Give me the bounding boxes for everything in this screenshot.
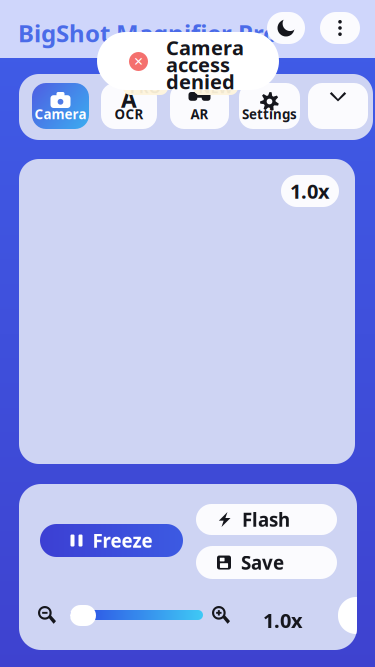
button[interactable]: A xyxy=(101,83,157,129)
staticText: access xyxy=(166,51,230,78)
staticText: NEW xyxy=(198,78,232,97)
button[interactable]: 1.0x xyxy=(281,175,339,207)
button[interactable]: Toggle dark mode xyxy=(267,12,305,44)
button[interactable] xyxy=(308,83,368,129)
staticText: Camera xyxy=(166,34,244,61)
button[interactable]: Save xyxy=(196,546,337,579)
staticText: Freeze xyxy=(92,528,152,553)
staticText: A xyxy=(121,84,137,114)
staticText: OCR xyxy=(114,105,143,123)
button[interactable]: Flash xyxy=(196,504,337,535)
staticText: Save xyxy=(241,550,284,575)
button[interactable]: Freeze xyxy=(40,524,183,557)
button[interactable]: Camera xyxy=(32,83,89,129)
staticText: 1.0x xyxy=(263,607,303,634)
staticText: Settings xyxy=(242,105,297,123)
staticText: 1.0x xyxy=(290,178,330,204)
staticText: AR xyxy=(190,105,208,123)
button[interactable]: AR xyxy=(170,83,229,129)
staticText: BigShot Magnifier Pro xyxy=(18,17,278,49)
staticText: Camera xyxy=(34,105,86,123)
staticText: ✕ xyxy=(133,55,143,68)
button[interactable]: Settings xyxy=(239,83,300,129)
staticText: PRO xyxy=(130,78,161,97)
button[interactable]: More options xyxy=(320,12,360,44)
staticText: Flash xyxy=(242,507,290,532)
staticText: denied xyxy=(166,68,235,95)
